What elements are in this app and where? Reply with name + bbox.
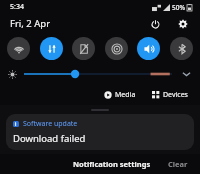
staticText: i [15, 121, 17, 127]
staticText: Media [115, 90, 136, 100]
button[interactable]: Expand [178, 66, 194, 82]
button[interactable]: Power [147, 16, 163, 32]
button[interactable]: Mobile data [40, 37, 63, 60]
staticText: Clear [168, 159, 188, 169]
staticText: Download failed [13, 132, 86, 145]
button[interactable]: Wi-Fi [7, 37, 30, 60]
button[interactable]: Notification settings [69, 156, 155, 172]
button[interactable]: i [6, 114, 194, 150]
button[interactable]: Location [105, 37, 128, 60]
button[interactable]: Brightness [24, 66, 172, 82]
button[interactable]: Bluetooth [170, 37, 193, 60]
button[interactable]: Silent mode [72, 37, 95, 60]
staticText: 50% [172, 3, 185, 12]
button[interactable]: Settings [175, 16, 191, 32]
staticText: Notification settings [73, 159, 151, 169]
staticText: Software update [23, 119, 78, 129]
button[interactable]: Devices [149, 88, 191, 102]
button[interactable]: Media [101, 88, 139, 102]
staticText: 5:34 [10, 2, 24, 12]
button[interactable]: Sound [137, 37, 160, 60]
staticText: Fri, 2 Apr [10, 17, 51, 30]
button[interactable]: Clear [164, 156, 192, 172]
staticText: Devices [163, 90, 188, 100]
